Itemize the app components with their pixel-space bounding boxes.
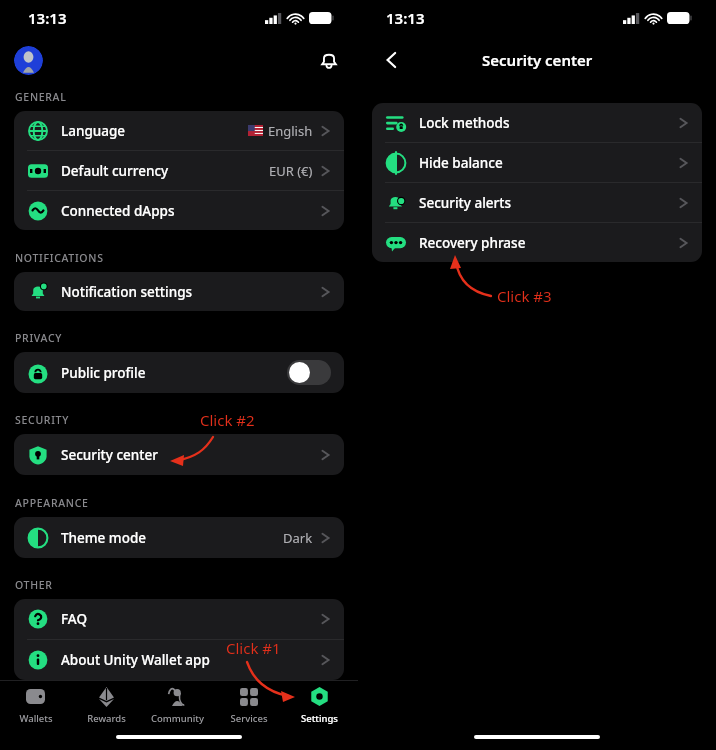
staticText: 13:13 [28,8,67,28]
staticText: PRIVACY [15,331,63,345]
staticText: Click #1 [226,638,281,658]
staticText: Notification settings [61,283,193,301]
button[interactable]: Connected dApps [14,191,344,230]
staticText: EUR (€) [269,162,313,180]
button[interactable]: Language [14,111,344,150]
button[interactable]: Lock methods [372,103,702,142]
staticText: English [268,122,313,140]
staticText: Theme mode [61,529,146,547]
button[interactable]: Security center [14,434,344,475]
staticText: Rewards [87,712,126,725]
button[interactable]: Community [142,681,213,729]
button[interactable]: Wallets [0,681,71,729]
button[interactable]: Notification settings [14,272,344,311]
button[interactable]: Security alerts [372,183,702,222]
button[interactable]: Back [376,45,406,75]
staticText: Security center [61,446,158,464]
staticText: Dark [283,529,313,547]
staticText: NOTIFICATIONS [15,251,104,265]
staticText: FAQ [61,610,88,628]
staticText: APPEARANCE [15,496,89,510]
button[interactable]: About Unity Wallet app [14,640,344,680]
staticText: Settings [301,712,338,725]
staticText: Recovery phrase [419,234,526,252]
staticText: Security alerts [419,194,511,212]
staticText: Security center [482,50,593,70]
button[interactable]: Public profile toggle [287,360,331,385]
staticText: Connected dApps [61,202,175,220]
staticText: 13:13 [386,8,425,28]
staticText: Lock methods [419,114,510,132]
button[interactable]: Recovery phrase [372,223,702,262]
staticText: Community [151,712,204,725]
staticText: Hide balance [419,154,503,172]
staticText: Language [61,122,126,140]
button[interactable]: Public profile [14,352,344,393]
button[interactable]: Rewards [71,681,142,729]
button[interactable]: Services [213,681,284,729]
button[interactable]: Default currency [14,151,344,190]
staticText: Services [230,712,268,725]
button[interactable]: Settings [284,681,355,729]
staticText: About Unity Wallet app [61,651,210,669]
button[interactable]: Notifications [314,45,344,75]
button[interactable]: FAQ [14,599,344,639]
staticText: SECURITY [15,413,70,427]
staticText: Public profile [61,364,146,382]
button[interactable]: Profile [14,46,43,75]
staticText: Default currency [61,162,169,180]
staticText: OTHER [15,578,53,592]
button[interactable]: Theme mode [14,517,344,558]
staticText: Click #3 [497,286,552,306]
staticText: Wallets [19,712,53,725]
staticText: GENERAL [15,90,67,104]
button[interactable]: Hide balance [372,143,702,182]
staticText: Click #2 [200,410,255,430]
